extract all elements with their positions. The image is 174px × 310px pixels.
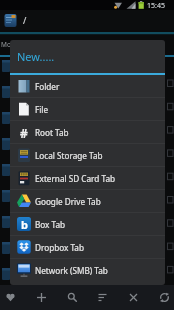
- button[interactable]: Google Drive Tab: [10, 190, 165, 212]
- staticText: Dropbox Tab: [35, 242, 84, 253]
- button[interactable]: [33, 285, 49, 310]
- staticText: New.....: [17, 49, 55, 64]
- staticText: Local Storage Tab: [35, 150, 103, 161]
- button[interactable]: [64, 285, 80, 310]
- button[interactable]: [94, 285, 110, 310]
- button[interactable]: b: [10, 213, 165, 235]
- staticText: Google Drive Tab: [35, 196, 101, 207]
- staticText: Box Tab: [35, 219, 66, 230]
- staticText: File: [35, 104, 49, 115]
- staticText: Root Tab: [35, 127, 69, 138]
- button[interactable]: [125, 285, 141, 310]
- staticText: 15:45: [147, 1, 165, 11]
- staticText: Network (SMB) Tab: [35, 265, 108, 276]
- button[interactable]: Local Storage Tab: [10, 144, 165, 166]
- staticText: Mov: [1, 40, 15, 49]
- button[interactable]: #: [10, 121, 165, 143]
- button[interactable]: /: [0, 10, 174, 30]
- button[interactable]: Dropbox Tab: [10, 236, 165, 258]
- button[interactable]: Network (SMB) Tab: [10, 259, 165, 281]
- button[interactable]: External SD Card Tab: [10, 167, 165, 189]
- staticText: External SD Card Tab: [35, 173, 116, 184]
- button[interactable]: Folder: [10, 75, 165, 97]
- staticText: /: [23, 14, 27, 26]
- staticText: Folder: [35, 81, 60, 92]
- button[interactable]: [156, 285, 172, 310]
- staticText: #: [20, 125, 28, 139]
- staticText: b: [21, 217, 28, 231]
- button[interactable]: File: [10, 98, 165, 120]
- button[interactable]: [2, 285, 18, 310]
